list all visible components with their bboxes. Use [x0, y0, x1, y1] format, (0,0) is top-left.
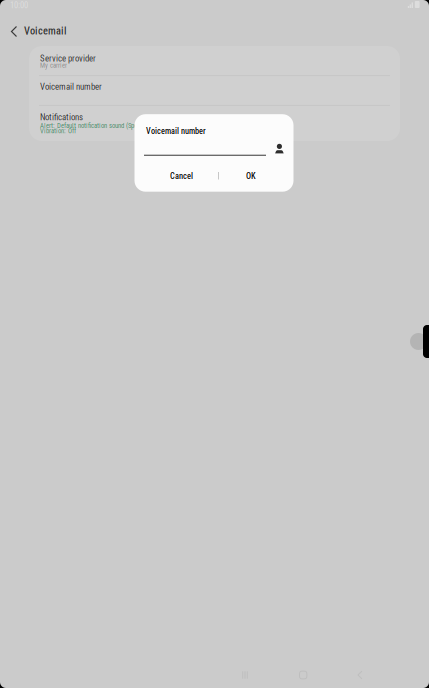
staticText: Voicemail number: [40, 82, 102, 92]
button[interactable]: Notifications: [29, 105, 400, 141]
button[interactable]: Cancel: [146, 167, 217, 185]
staticText: 10:00: [10, 0, 28, 10]
staticText: Voicemail number: [146, 126, 206, 136]
staticText: My carrier: [40, 61, 67, 69]
button[interactable]: Service provider: [29, 46, 400, 75]
staticText: Voicemail: [24, 25, 67, 37]
button[interactable]: Choose from contacts: [271, 140, 288, 157]
staticText: Service provider: [40, 53, 96, 64]
button[interactable]: Voicemail number: [29, 75, 400, 105]
staticText: Vibration: Off: [40, 127, 76, 135]
staticText: Cancel: [170, 171, 193, 181]
staticText: OK: [246, 171, 256, 181]
button[interactable]: Back: [2, 19, 26, 43]
staticText: Alert: Default notification sound (Speak…: [40, 122, 150, 129]
button[interactable]: OK: [215, 167, 286, 185]
staticText: Notifications: [40, 112, 83, 122]
